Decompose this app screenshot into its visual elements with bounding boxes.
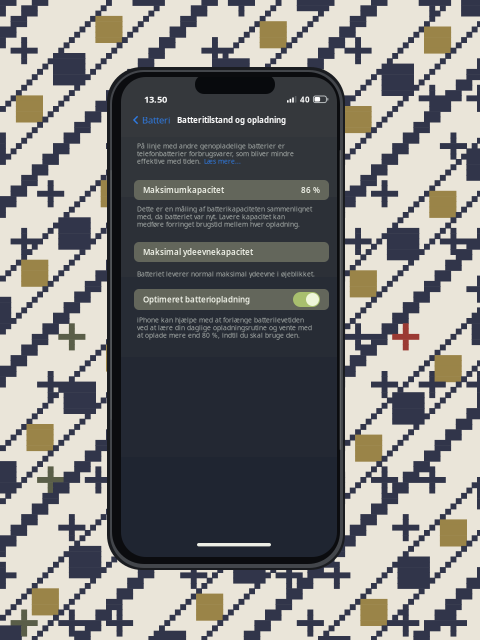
staticText: telefonbatterier forbrugsvarer, som bliv… [137,149,294,158]
button[interactable]: Læs mere... [204,157,241,166]
staticText: effektive med tiden. [137,157,201,166]
button[interactable]: Maksimumkapacitet [134,180,329,200]
staticText: 13.50 [144,93,167,105]
button[interactable]: Optimeret batteriopladning [134,289,329,310]
staticText: Maksimumkapacitet [143,185,224,195]
staticText: Maksimal ydeevnekapacitet [143,247,253,257]
staticText: 86 % [301,185,320,195]
staticText: Batteriet leverer normal maksimal ydeevn… [137,269,315,278]
button[interactable]: Batteri [121,112,177,128]
staticText: medføre forringet brugstid mellem hver o… [137,220,300,229]
staticText: Optimeret batteriopladning [143,294,250,305]
staticText: 40 [300,94,310,105]
staticText: iPhone kan hjælpe med at forlænge batter… [137,315,304,324]
staticText: Batteri [142,114,170,126]
button[interactable]: Optimeret batteriopladning [293,292,320,307]
staticText: at oplade mere end 80 %, indtil du skal … [137,331,300,340]
staticText: med, da batteriet var nyt. Lavere kapaci… [137,212,285,221]
staticText: Dette er en måling af batterikapaciteten… [137,204,312,213]
staticText: Batteritilstand og opladning [177,115,286,125]
staticText: På linje med andre genopladelige batteri… [137,141,285,150]
button[interactable]: Maksimal ydeevnekapacitet [134,242,329,262]
staticText: ved at lære din daglige opladningsrutine… [137,323,312,332]
staticText: Læs mere... [204,157,241,166]
